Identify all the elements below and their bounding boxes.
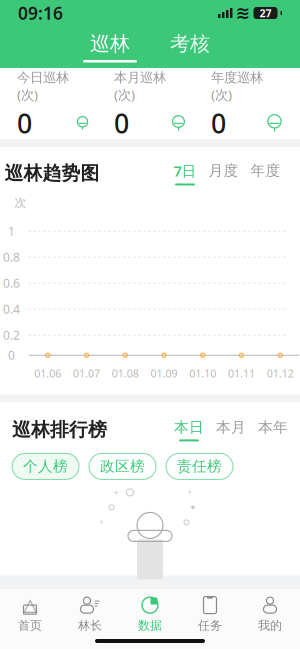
staticText: 7日	[173, 161, 196, 180]
staticText: 责任榜	[177, 457, 222, 475]
staticText: 01.11	[228, 366, 255, 380]
button[interactable]: 本年	[258, 418, 288, 441]
staticText: 本年	[258, 418, 288, 436]
button[interactable]: 任务	[180, 589, 240, 633]
button[interactable]: 个人榜	[12, 453, 79, 479]
staticText: +	[187, 487, 192, 498]
button[interactable]: 我的	[240, 589, 300, 633]
staticText: 年度巡林(次)	[211, 69, 263, 103]
button[interactable]: △	[0, 589, 60, 633]
staticText: 考核	[170, 31, 210, 56]
staticText: 0.8	[3, 249, 20, 265]
button[interactable]: 本日	[174, 418, 204, 441]
staticText: 0	[8, 347, 15, 363]
button[interactable]: 7日	[173, 161, 196, 185]
staticText: 首页	[18, 618, 42, 633]
staticText: 01.06	[34, 366, 61, 380]
staticText: 任务	[198, 618, 222, 633]
button[interactable]: 数据	[120, 589, 180, 633]
staticText: 林长	[78, 618, 102, 633]
staticText: 本日	[174, 418, 204, 436]
staticText: 巡林趋势图	[4, 162, 99, 185]
button[interactable]: 月度	[208, 162, 238, 185]
staticText: ✦	[189, 502, 197, 513]
staticText: 本月巡林(次)	[114, 69, 166, 103]
staticText: +	[113, 486, 118, 499]
staticText: ≋	[235, 3, 250, 23]
staticText: 27	[259, 6, 271, 20]
staticText: 巡林排行榜	[12, 418, 107, 441]
staticText: 01.07	[73, 366, 100, 380]
staticText: 0	[211, 105, 226, 141]
staticText: 次	[14, 195, 26, 210]
staticText: 数据	[138, 618, 162, 633]
staticText: 0	[17, 105, 32, 141]
staticText: 月度	[208, 162, 238, 180]
button[interactable]: 年度巡林(次)	[202, 79, 292, 129]
button[interactable]: 本月	[216, 418, 246, 441]
staticText: 01.08	[112, 366, 139, 380]
button[interactable]: 政区榜	[89, 453, 156, 479]
staticText: 本月	[216, 418, 246, 436]
staticText: 01.09	[150, 366, 177, 380]
staticText: 0.6	[3, 275, 20, 291]
button[interactable]: 年度	[250, 162, 280, 185]
staticText: 0	[114, 105, 129, 141]
staticText: 09:16	[18, 1, 63, 24]
staticText: △	[23, 595, 36, 614]
staticText: 个人榜	[23, 457, 68, 475]
staticText: 政区榜	[100, 457, 145, 475]
staticText: 今日巡林(次)	[17, 69, 69, 103]
staticText: 1	[8, 223, 15, 239]
staticText: +	[99, 517, 104, 528]
staticText: 01.12	[267, 366, 294, 380]
button[interactable]: 责任榜	[166, 453, 233, 479]
staticText: 01.10	[189, 366, 216, 380]
staticText: 年度	[250, 162, 280, 180]
staticText: 0.2	[3, 327, 20, 343]
button[interactable]: 本月巡林(次)	[105, 79, 195, 129]
staticText: 我的	[258, 618, 282, 633]
staticText: 巡林	[90, 31, 130, 56]
button[interactable]: 巡林	[70, 31, 150, 63]
button[interactable]: 考核	[150, 31, 230, 63]
button[interactable]: 今日巡林(次)	[8, 79, 98, 129]
button[interactable]: 林长	[60, 589, 120, 633]
staticText: 0.4	[3, 301, 20, 317]
